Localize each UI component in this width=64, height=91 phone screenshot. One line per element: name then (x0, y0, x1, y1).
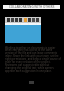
staticText: Working together on documents is easier … (5, 46, 61, 73)
staticText: COLLABORATING WITH OTHERS (9, 5, 55, 9)
button[interactable]: COLLABORATING WITH OTHERS (3, 5, 60, 9)
